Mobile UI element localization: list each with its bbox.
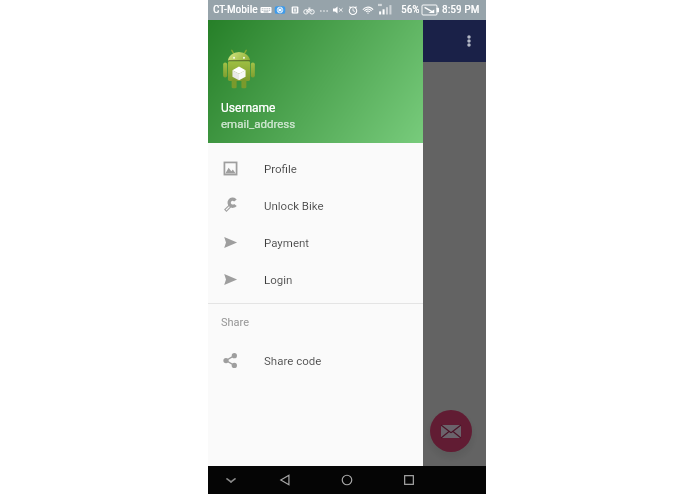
button[interactable]: Home bbox=[333, 466, 361, 494]
staticText: email_address bbox=[221, 117, 296, 130]
button[interactable]: Back bbox=[271, 466, 299, 494]
staticText: Login bbox=[264, 273, 293, 286]
button[interactable]: Share code bbox=[208, 342, 423, 379]
staticText: Share code bbox=[264, 354, 322, 367]
button[interactable]: Recents bbox=[395, 466, 423, 494]
button[interactable]: Send email bbox=[430, 410, 472, 452]
staticText: Profile bbox=[264, 162, 297, 175]
staticText: Share bbox=[221, 316, 250, 329]
staticText: Username bbox=[221, 101, 276, 115]
staticText: CT-Mobile bbox=[213, 2, 258, 15]
staticText: Payment bbox=[264, 236, 310, 249]
button[interactable]: Unlock Bike bbox=[208, 187, 423, 224]
staticText: 56% bbox=[401, 2, 420, 15]
button[interactable]: Profile bbox=[208, 150, 423, 187]
button[interactable]: Hide keyboard bbox=[217, 466, 245, 494]
button[interactable]: Payment bbox=[208, 224, 423, 261]
staticText: 8:59 PM bbox=[442, 2, 480, 15]
button[interactable]: More options bbox=[456, 28, 482, 54]
staticText: Unlock Bike bbox=[264, 199, 324, 212]
button[interactable]: Login bbox=[208, 261, 423, 298]
